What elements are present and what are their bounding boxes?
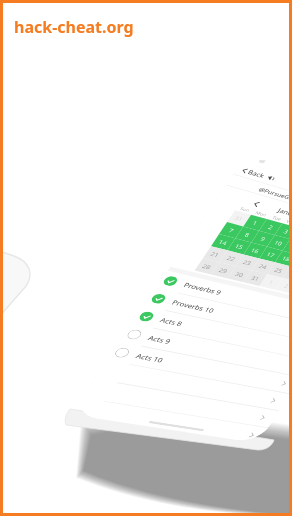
button[interactable]: @PursueGod bbox=[1, 38, 253, 57]
button[interactable]: Proverbs 10 bbox=[1, 244, 253, 274]
button[interactable]: Proverbs 9 bbox=[1, 213, 253, 243]
button[interactable]: Back bbox=[5, 15, 43, 37]
button[interactable]: Open chapter bbox=[1, 430, 253, 457]
button[interactable]: Open chapter bbox=[1, 368, 253, 398]
staticText: hack-cheat.org bbox=[14, 16, 134, 38]
button[interactable]: Acts 9 bbox=[1, 306, 253, 336]
staticText: Back bbox=[17, 19, 40, 33]
button[interactable]: Open chapter bbox=[1, 399, 253, 429]
button[interactable]: Audio bbox=[44, 21, 54, 31]
button[interactable]: Acts 8 bbox=[1, 275, 253, 305]
button[interactable]: Acts 10 bbox=[1, 337, 253, 367]
